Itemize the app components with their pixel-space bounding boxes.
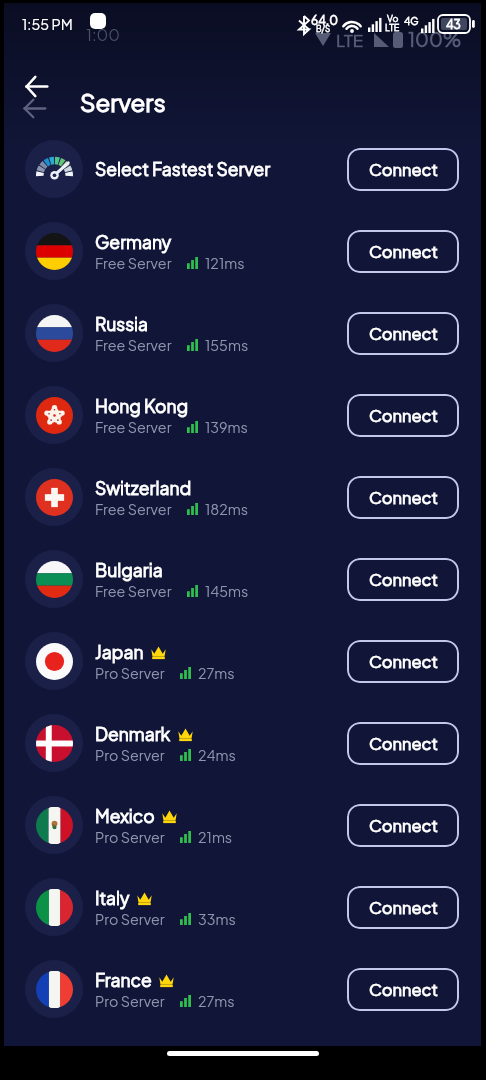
button[interactable]: Switzerland xyxy=(4,456,481,538)
button[interactable]: Connect xyxy=(347,804,459,847)
staticText: Vo xyxy=(387,13,399,24)
staticText: Pro Server xyxy=(95,910,165,928)
button[interactable]: Connect xyxy=(347,722,459,765)
button[interactable]: Japan xyxy=(4,620,481,702)
button[interactable]: Connect xyxy=(347,476,459,519)
staticText: B/S xyxy=(316,24,331,34)
button[interactable]: Mexico xyxy=(4,784,481,866)
button[interactable]: Connect xyxy=(347,968,459,1011)
staticText: 64.0 xyxy=(311,13,338,28)
staticText: Connect xyxy=(369,979,438,1000)
staticText: Connect xyxy=(369,569,438,590)
staticText: 155ms xyxy=(205,336,249,354)
staticText: LTE xyxy=(336,29,364,50)
staticText: France xyxy=(95,969,152,991)
staticText: Connect xyxy=(369,733,438,754)
staticText: 1:55 PM xyxy=(22,15,73,33)
button[interactable]: Connect xyxy=(347,640,459,683)
staticText: 21ms xyxy=(198,828,233,846)
staticText: Free Server xyxy=(95,336,172,354)
staticText: 24ms xyxy=(198,746,236,764)
staticText: Pro Server xyxy=(95,746,165,764)
staticText: Connect xyxy=(369,815,438,836)
staticText: 27ms xyxy=(198,664,235,682)
staticText: Bulgaria xyxy=(95,559,163,581)
button[interactable]: Connect xyxy=(347,148,459,191)
button[interactable]: Back xyxy=(16,67,56,105)
staticText: 4G xyxy=(404,15,419,28)
staticText: 27ms xyxy=(198,992,235,1010)
staticText: 182ms xyxy=(205,500,249,518)
staticText: Free Server xyxy=(95,500,172,518)
button[interactable]: Connect xyxy=(347,230,459,273)
button[interactable]: Connect xyxy=(347,558,459,601)
staticText: 145ms xyxy=(205,582,249,600)
staticText: Connect xyxy=(369,159,438,180)
button[interactable]: Connect xyxy=(347,394,459,437)
staticText: Free Server xyxy=(95,418,172,436)
staticText: Connect xyxy=(369,897,438,918)
staticText: Free Server xyxy=(95,582,172,600)
staticText: Japan xyxy=(95,641,144,663)
staticText: 43 xyxy=(446,17,461,32)
staticText: Pro Server xyxy=(95,828,165,846)
button[interactable]: Select Fastest Server xyxy=(4,128,481,210)
button[interactable]: Denmark xyxy=(4,702,481,784)
button[interactable]: Connect xyxy=(347,312,459,355)
staticText: Select Fastest Server xyxy=(95,158,271,180)
staticText: 121ms xyxy=(205,254,245,272)
button[interactable]: France xyxy=(4,948,481,1030)
staticText: Connect xyxy=(369,323,438,344)
button[interactable]: Germany xyxy=(4,210,481,292)
staticText: 100% xyxy=(408,27,462,51)
staticText: Connect xyxy=(369,405,438,426)
staticText: Hong Kong xyxy=(95,395,189,417)
button[interactable]: Hong Kong xyxy=(4,374,481,456)
button[interactable]: Connect xyxy=(347,886,459,929)
button[interactable]: Russia xyxy=(4,292,481,374)
staticText: Russia xyxy=(95,313,149,335)
staticText: Mexico xyxy=(95,805,155,827)
staticText: Connect xyxy=(369,487,438,508)
staticText: Connect xyxy=(369,241,438,262)
staticText: Denmark xyxy=(95,723,171,745)
staticText: Servers xyxy=(80,87,166,117)
staticText: Switzerland xyxy=(95,477,192,499)
button[interactable]: Italy xyxy=(4,866,481,948)
staticText: 139ms xyxy=(205,418,248,436)
staticText: Connect xyxy=(369,651,438,672)
staticText: Pro Server xyxy=(95,992,165,1010)
staticText: LTE xyxy=(385,22,400,33)
staticText: Pro Server xyxy=(95,664,165,682)
staticText: 33ms xyxy=(198,910,236,928)
staticText: Free Server xyxy=(95,254,172,272)
staticText: Germany xyxy=(95,231,172,253)
staticText: 1:00 xyxy=(86,24,120,44)
staticText: Italy xyxy=(95,887,130,909)
button[interactable]: Bulgaria xyxy=(4,538,481,620)
